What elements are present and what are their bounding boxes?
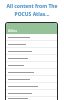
button[interactable] xyxy=(6,62,57,69)
button[interactable] xyxy=(6,83,57,90)
button[interactable] xyxy=(6,97,57,100)
button[interactable] xyxy=(6,76,57,83)
button[interactable] xyxy=(6,48,57,55)
button[interactable] xyxy=(6,90,57,97)
button[interactable] xyxy=(6,55,57,62)
staticText: Atlas xyxy=(8,28,18,33)
staticText: All content from The POCUS Atlas... xyxy=(6,3,58,18)
button[interactable] xyxy=(6,34,57,41)
button[interactable] xyxy=(6,41,57,48)
button[interactable] xyxy=(6,69,57,76)
